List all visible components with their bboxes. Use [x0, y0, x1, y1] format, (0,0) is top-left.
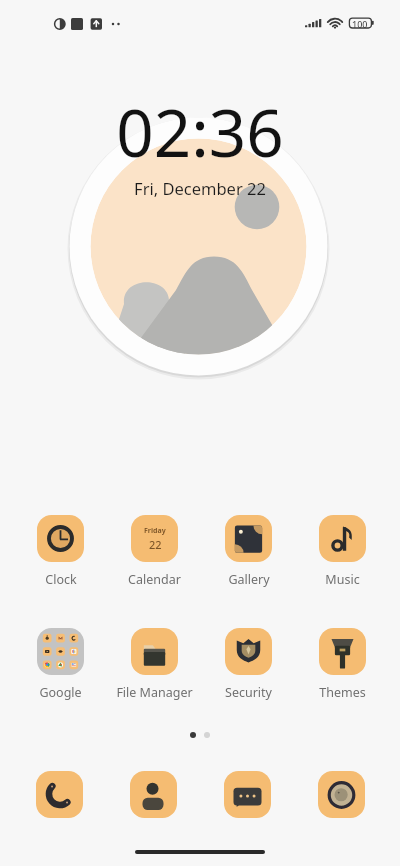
staticText: 22 — [149, 537, 162, 552]
button[interactable]: File Manager — [107, 628, 201, 701]
staticText: Fri, December 22 — [134, 177, 266, 199]
button[interactable]: Clock — [13, 515, 107, 588]
staticText: Security — [225, 684, 272, 701]
staticText: Themes — [319, 684, 366, 701]
staticText: Friday — [144, 526, 166, 536]
button[interactable]: Music — [295, 515, 389, 588]
button[interactable]: Phone — [36, 771, 83, 818]
button[interactable]: Friday — [107, 515, 201, 588]
button[interactable]: Google — [13, 628, 107, 701]
button[interactable]: Messages — [224, 771, 271, 818]
button[interactable]: Gallery — [201, 515, 295, 588]
staticText: File Manager — [116, 684, 193, 701]
button[interactable]: Security — [201, 628, 295, 701]
staticText: Music — [325, 571, 360, 588]
button[interactable]: Camera — [318, 771, 365, 818]
staticText: Google — [39, 684, 82, 701]
staticText: Calendar — [128, 571, 181, 588]
staticText: Gallery — [228, 571, 270, 588]
staticText: 100 — [352, 18, 368, 30]
button[interactable]: Contacts — [130, 771, 177, 818]
button[interactable]: Themes — [295, 628, 389, 701]
staticText: 02:36 — [116, 87, 284, 176]
staticText: Clock — [45, 571, 77, 588]
